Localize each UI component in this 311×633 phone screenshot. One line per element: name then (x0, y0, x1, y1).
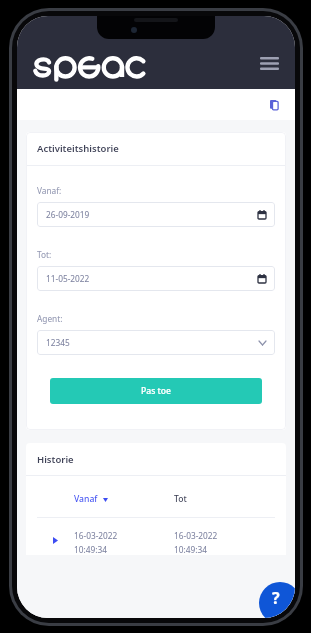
button[interactable]: Menu (255, 49, 283, 77)
other: Pick date (258, 274, 266, 283)
staticText: Activiteitshistorie (37, 142, 119, 155)
staticText: 10:49:34 (74, 544, 107, 555)
staticText: Agent: (37, 313, 63, 324)
staticText: 26-09-2019 (46, 209, 90, 220)
staticText: 16-03-2022 (74, 530, 118, 541)
staticText: Pas toe (141, 385, 172, 397)
staticText: Vanaf: (37, 185, 62, 196)
staticText: 16-03-2022 (174, 530, 218, 541)
button[interactable]: Vanaf (74, 493, 174, 505)
staticText: 10:49:34 (174, 544, 207, 555)
other: Pick date (258, 210, 266, 219)
button[interactable]: 12345 (37, 330, 275, 355)
staticText: Historie (37, 453, 74, 466)
button[interactable]: 26-09-2019 (37, 202, 275, 227)
button[interactable]: 16-03-2022 (37, 530, 286, 555)
staticText: Vanaf (74, 493, 98, 505)
button[interactable]: Pas toe (50, 378, 262, 404)
staticText: 12345 (46, 337, 70, 348)
button[interactable]: Help (259, 582, 295, 618)
staticText: Tot: (37, 249, 52, 260)
staticText: ? (272, 587, 280, 609)
staticText: 11-05-2022 (46, 273, 90, 284)
staticText: Tot (174, 493, 187, 505)
button[interactable]: Copy (264, 95, 284, 115)
button[interactable]: 11-05-2022 (37, 266, 275, 291)
